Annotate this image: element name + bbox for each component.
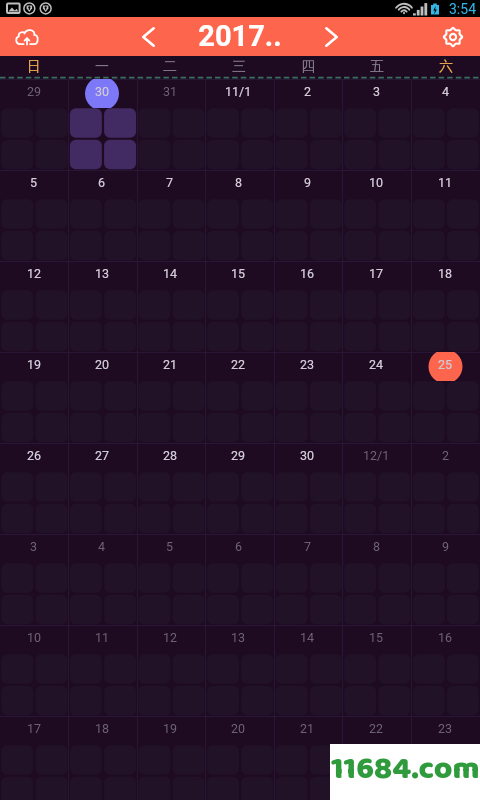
staticText: 19 — [163, 721, 178, 736]
button[interactable]: 23 — [273, 352, 342, 443]
staticText: 29 — [231, 448, 246, 463]
staticText: 27 — [95, 448, 110, 463]
button[interactable]: 9 — [273, 170, 342, 261]
staticText: 8 — [373, 539, 381, 554]
staticText: 14 — [163, 266, 178, 281]
button[interactable]: 30 — [273, 443, 342, 534]
button[interactable]: 24 — [342, 352, 411, 443]
staticText: 7 — [166, 175, 174, 190]
button[interactable]: 19 — [0, 352, 68, 443]
button[interactable]: 15 — [342, 625, 411, 716]
staticText: 21 — [300, 721, 315, 736]
button[interactable]: 27 — [68, 443, 136, 534]
staticText: 23 — [438, 721, 453, 736]
button[interactable]: 16 — [273, 261, 342, 352]
button[interactable]: 10 — [342, 170, 411, 261]
button[interactable]: 29 — [204, 443, 273, 534]
button[interactable]: 14 — [136, 261, 204, 352]
button[interactable]: 31 — [136, 79, 204, 170]
button[interactable]: 13 — [68, 261, 136, 352]
button[interactable]: 20 — [68, 352, 136, 443]
staticText: 21 — [163, 357, 178, 372]
button[interactable]: 25 — [411, 352, 480, 443]
button[interactable]: 10 — [0, 625, 68, 716]
staticText: 30 — [95, 84, 110, 99]
button[interactable]: 6 — [204, 534, 273, 625]
button[interactable]: 21 — [273, 716, 342, 800]
staticText: 2 — [442, 448, 450, 463]
button[interactable]: 22 — [204, 352, 273, 443]
staticText: 2 — [304, 84, 312, 99]
staticText: 11 — [95, 630, 110, 645]
button[interactable]: 一 — [68, 56, 136, 77]
button[interactable]: 2 — [273, 79, 342, 170]
button[interactable]: 5 — [136, 534, 204, 625]
button[interactable]: 21 — [136, 352, 204, 443]
button[interactable]: 8 — [204, 170, 273, 261]
button[interactable]: 15 — [204, 261, 273, 352]
button[interactable]: 18 — [68, 716, 136, 800]
button[interactable]: 11 — [411, 170, 480, 261]
button[interactable]: 3 — [342, 79, 411, 170]
staticText: 15 — [369, 630, 384, 645]
button[interactable]: Previous month — [130, 17, 166, 56]
button[interactable]: 五 — [342, 56, 411, 77]
staticText: 12/1 — [363, 448, 390, 463]
staticText: 6 — [98, 175, 106, 190]
button[interactable]: 4 — [411, 79, 480, 170]
button[interactable]: 12 — [0, 261, 68, 352]
staticText: 29 — [27, 84, 42, 99]
staticText: 3:54 — [449, 1, 476, 17]
button[interactable]: 17 — [342, 261, 411, 352]
button[interactable]: 20 — [204, 716, 273, 800]
button[interactable]: 26 — [0, 443, 68, 534]
button[interactable]: 14 — [273, 625, 342, 716]
button[interactable]: 19 — [136, 716, 204, 800]
staticText: 22 — [369, 721, 384, 736]
button[interactable]: 3 — [0, 534, 68, 625]
staticText: 4 — [442, 84, 450, 99]
button[interactable]: 30 — [68, 79, 136, 170]
staticText: 六 — [439, 58, 453, 76]
button[interactable]: 六 — [411, 56, 480, 77]
button[interactable]: Settings — [426, 17, 480, 56]
button[interactable]: 7 — [273, 534, 342, 625]
staticText: 二 — [163, 58, 177, 76]
button[interactable]: 29 — [0, 79, 68, 170]
staticText: 18 — [95, 721, 110, 736]
button[interactable]: 16 — [411, 625, 480, 716]
button[interactable]: Next month — [313, 17, 349, 56]
button[interactable]: 日 — [0, 56, 68, 77]
button[interactable]: 二 — [136, 56, 204, 77]
button[interactable]: 4 — [68, 534, 136, 625]
button[interactable]: 22 — [342, 716, 411, 800]
button[interactable]: Upload to cloud — [0, 17, 54, 56]
button[interactable]: 12 — [136, 625, 204, 716]
button[interactable]: 三 — [204, 56, 273, 77]
staticText: 15 — [231, 266, 246, 281]
staticText: 20 — [231, 721, 246, 736]
button[interactable]: 四 — [273, 56, 342, 77]
button[interactable]: 6 — [68, 170, 136, 261]
button[interactable]: 18 — [411, 261, 480, 352]
button[interactable]: 12/1 — [342, 443, 411, 534]
button[interactable]: 2 — [411, 443, 480, 534]
button[interactable]: 8 — [342, 534, 411, 625]
staticText: 6 — [235, 539, 243, 554]
button[interactable]: 11/1 — [204, 79, 273, 170]
button[interactable]: 5 — [0, 170, 68, 261]
button[interactable]: 17 — [0, 716, 68, 800]
button[interactable]: 7 — [136, 170, 204, 261]
button[interactable]: 28 — [136, 443, 204, 534]
staticText: 5 — [166, 539, 174, 554]
staticText: 10 — [27, 630, 42, 645]
staticText: 2017.. — [198, 19, 282, 53]
staticText: 31 — [163, 84, 178, 99]
staticText: 日 — [27, 58, 41, 76]
staticText: 18 — [438, 266, 453, 281]
staticText: 16 — [438, 630, 453, 645]
button[interactable]: 23 — [411, 716, 480, 800]
button[interactable]: 11 — [68, 625, 136, 716]
button[interactable]: 13 — [204, 625, 273, 716]
button[interactable]: 9 — [411, 534, 480, 625]
